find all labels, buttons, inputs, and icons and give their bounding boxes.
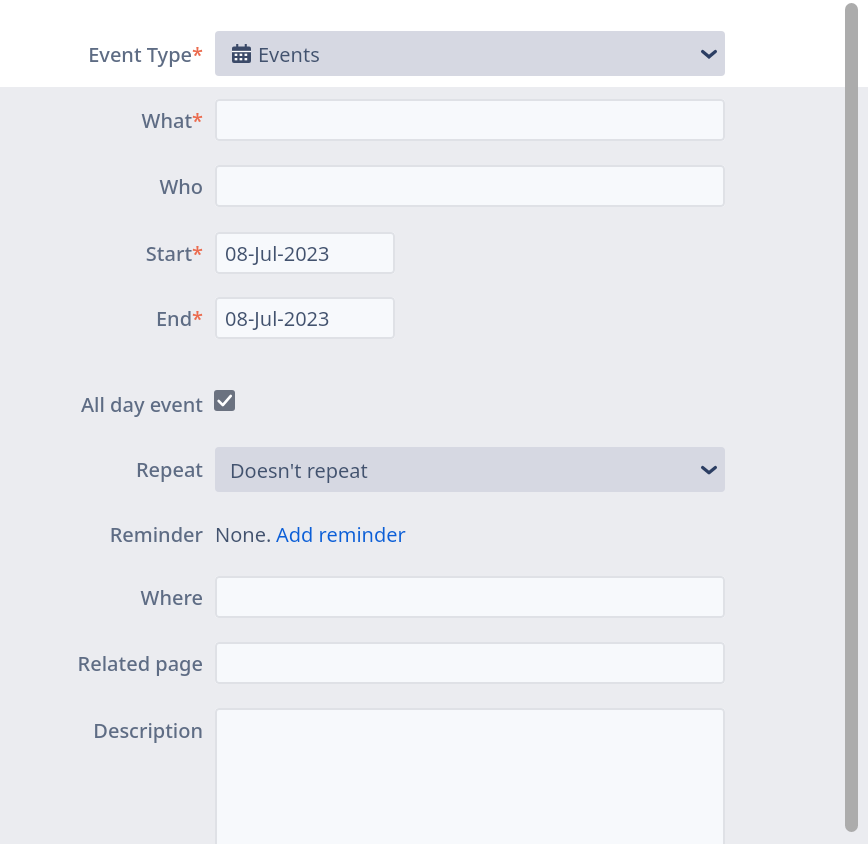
staticText: Where <box>140 584 203 611</box>
staticText: Who <box>159 173 203 200</box>
staticText: Add reminder <box>276 521 406 548</box>
staticText: Related page <box>77 650 203 677</box>
button[interactable] <box>215 31 725 76</box>
button[interactable]: All day event checkbox <box>214 390 235 411</box>
button[interactable]: Add reminder <box>276 519 406 549</box>
staticText: All day event <box>81 391 203 418</box>
button[interactable] <box>215 576 725 618</box>
staticText: Events <box>258 41 320 68</box>
staticText: None. <box>215 521 272 548</box>
button[interactable] <box>215 447 725 492</box>
button[interactable]: 08-Jul-2023 <box>215 232 395 274</box>
button[interactable] <box>215 642 725 684</box>
button[interactable] <box>215 99 725 141</box>
button[interactable]: 08-Jul-2023 <box>215 297 395 339</box>
staticText: Event Type* <box>88 41 203 68</box>
button[interactable] <box>215 165 725 207</box>
staticText: Start* <box>145 240 203 267</box>
staticText: End* <box>155 305 203 332</box>
button[interactable] <box>215 708 725 844</box>
staticText: What* <box>141 107 203 134</box>
staticText: 08-Jul-2023 <box>225 305 330 332</box>
staticText: Repeat <box>135 456 203 483</box>
staticText: Description <box>93 717 203 744</box>
staticText: Reminder <box>109 521 203 548</box>
staticText: Doesn't repeat <box>230 457 368 484</box>
staticText: 08-Jul-2023 <box>225 240 330 267</box>
